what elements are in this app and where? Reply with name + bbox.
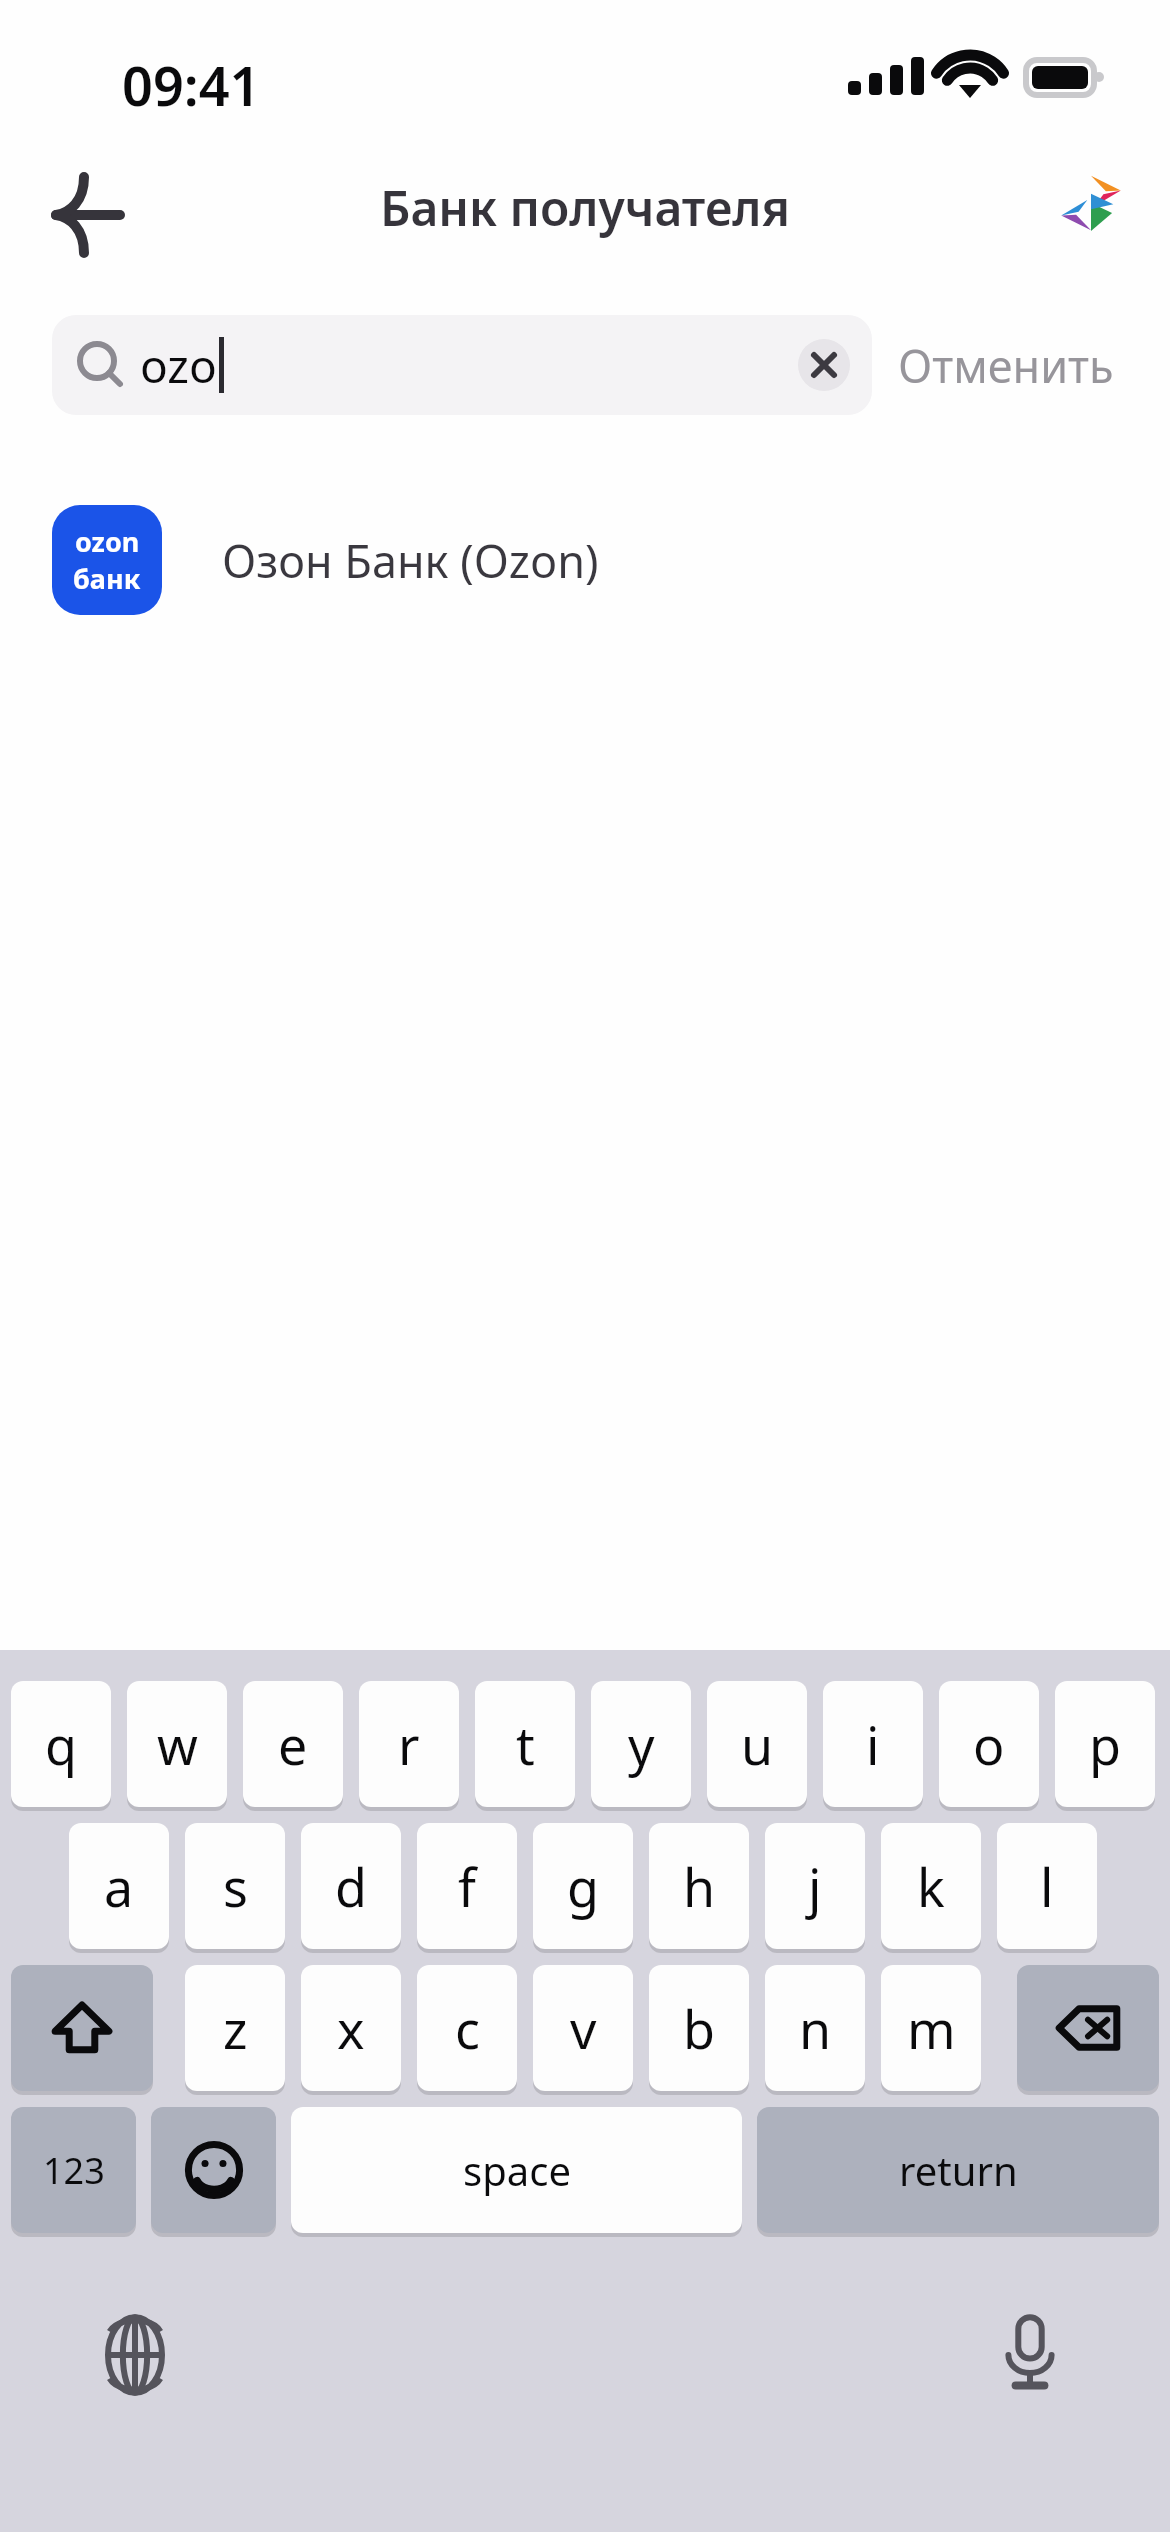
staticText: o: [973, 1709, 1005, 1780]
button[interactable]: y: [591, 1681, 691, 1807]
staticText: r: [398, 1709, 420, 1780]
button[interactable]: g: [533, 1823, 633, 1949]
staticText: c: [455, 1993, 480, 2064]
staticText: s: [223, 1851, 248, 1922]
button[interactable]: i: [823, 1681, 923, 1807]
button[interactable]: Back: [32, 160, 142, 270]
staticText: m: [907, 1993, 956, 2064]
staticText: ozo: [140, 334, 217, 397]
staticText: b: [683, 1993, 715, 2064]
button[interactable]: u: [707, 1681, 807, 1807]
button[interactable]: Shift: [11, 1965, 153, 2091]
button[interactable]: c: [417, 1965, 517, 2091]
button[interactable]: return: [757, 2107, 1159, 2233]
staticText: l: [1040, 1851, 1054, 1922]
button[interactable]: Backspace: [1017, 1965, 1159, 2091]
staticText: x: [337, 1993, 365, 2064]
button[interactable]: n: [765, 1965, 865, 2091]
button[interactable]: f: [417, 1823, 517, 1949]
button[interactable]: b: [649, 1965, 749, 2091]
staticText: v: [570, 1993, 597, 2064]
button[interactable]: p: [1055, 1681, 1155, 1807]
button[interactable]: a: [69, 1823, 169, 1949]
staticText: 09:41: [122, 48, 261, 122]
staticText: y: [628, 1709, 655, 1780]
button[interactable]: Clear text: [798, 339, 850, 391]
staticText: k: [917, 1851, 945, 1922]
staticText: банк: [73, 560, 141, 597]
button[interactable]: x: [301, 1965, 401, 2091]
button[interactable]: h: [649, 1823, 749, 1949]
staticText: a: [104, 1851, 134, 1922]
button[interactable]: Emoji: [151, 2107, 276, 2233]
button[interactable]: o: [939, 1681, 1039, 1807]
button[interactable]: z: [185, 1965, 285, 2091]
staticText: d: [335, 1851, 367, 1922]
staticText: Отменить: [898, 335, 1114, 396]
staticText: n: [799, 1993, 832, 2064]
button[interactable]: s: [185, 1823, 285, 1949]
staticText: u: [741, 1709, 774, 1780]
button[interactable]: 123: [11, 2107, 136, 2233]
button[interactable]: v: [533, 1965, 633, 2091]
staticText: return: [899, 2143, 1018, 2197]
button[interactable]: r: [359, 1681, 459, 1807]
staticText: e: [278, 1709, 308, 1780]
button[interactable]: m: [881, 1965, 981, 2091]
staticText: w: [157, 1709, 198, 1780]
staticText: i: [866, 1709, 880, 1780]
staticText: 123: [43, 2146, 105, 2195]
button[interactable]: ozon: [0, 490, 1170, 630]
staticText: z: [223, 1993, 248, 2064]
button[interactable]: e: [243, 1681, 343, 1807]
button[interactable]: t: [475, 1681, 575, 1807]
button[interactable]: space: [291, 2107, 742, 2233]
staticText: h: [683, 1851, 716, 1922]
button[interactable]: App logo: [1060, 172, 1122, 234]
staticText: p: [1089, 1709, 1121, 1780]
staticText: Озон Банк (Ozon): [222, 530, 599, 591]
button[interactable]: q: [11, 1681, 111, 1807]
button[interactable]: ozo: [52, 315, 872, 415]
button[interactable]: Отменить: [898, 315, 1114, 415]
staticText: j: [808, 1851, 822, 1922]
button[interactable]: d: [301, 1823, 401, 1949]
button[interactable]: Change keyboard language: [90, 2310, 180, 2400]
button[interactable]: k: [881, 1823, 981, 1949]
staticText: t: [516, 1709, 535, 1780]
staticText: g: [567, 1851, 599, 1922]
button[interactable]: w: [127, 1681, 227, 1807]
button[interactable]: l: [997, 1823, 1097, 1949]
staticText: q: [45, 1709, 77, 1780]
staticText: f: [458, 1851, 476, 1922]
staticText: ozon: [75, 523, 140, 560]
staticText: Банк получателя: [0, 175, 1170, 240]
button[interactable]: j: [765, 1823, 865, 1949]
button[interactable]: Dictation: [985, 2310, 1075, 2400]
staticText: space: [463, 2143, 571, 2197]
